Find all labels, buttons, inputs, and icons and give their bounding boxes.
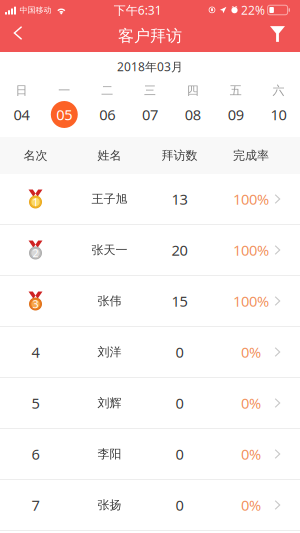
staticText: 张伟 [97,294,121,308]
staticText: 20 [171,240,187,260]
button[interactable]: 二 [86,81,129,129]
staticText: 四 [187,83,199,98]
staticText: 0% [241,444,261,464]
staticText: 张天一 [91,243,127,257]
staticText: 2 [32,246,38,260]
staticText: 0 [175,444,183,464]
staticText: 7 [31,495,39,515]
staticText: 二 [101,83,113,98]
staticText: 5 [31,393,39,413]
staticText: 中国移动 [19,5,51,15]
staticText: 刘辉 [97,396,121,410]
staticText: 07 [142,105,158,124]
button[interactable]: Filter [254,20,300,51]
staticText: 6 [31,444,39,464]
button[interactable]: Back [0,20,39,52]
staticText: 一 [58,83,70,98]
staticText: 李阳 [97,447,121,461]
button[interactable]: 四 [171,81,214,129]
staticText: 04 [13,105,29,124]
button[interactable]: 5 [0,378,300,429]
staticText: 三 [144,83,156,98]
staticText: 0 [175,393,183,413]
button[interactable]: 五 [214,81,257,129]
staticText: 名次 [23,148,47,163]
staticText: 05 [56,105,72,124]
staticText: 刘洋 [97,345,121,359]
staticText: 06 [99,105,115,124]
staticText: 下午6:31 [114,2,162,18]
staticText: 0% [241,495,261,515]
staticText: 拜访数 [161,148,197,163]
button[interactable]: 4 [0,327,300,378]
staticText: 1 [32,195,38,209]
button[interactable]: 7 [0,480,300,531]
staticText: 13 [171,189,187,209]
staticText: 09 [228,105,244,124]
staticText: 0% [241,342,261,362]
staticText: 4 [31,342,39,362]
staticText: 姓名 [97,148,121,163]
staticText: 日 [15,83,27,98]
staticText: 六 [273,83,285,98]
staticText: 0 [175,342,183,362]
button[interactable]: 六 [257,81,300,129]
staticText: 10 [271,105,287,124]
staticText: 100% [233,240,269,260]
button[interactable]: 2 [0,225,300,276]
staticText: 0% [241,393,261,413]
staticText: 100% [233,291,269,311]
staticText: 100% [233,189,269,209]
staticText: 五 [230,83,242,98]
button[interactable]: 3 [0,276,300,327]
staticText: 3 [32,297,38,311]
staticText: 2018年03月 [117,58,183,74]
staticText: 王子旭 [91,192,127,206]
button[interactable]: 三 [129,81,171,129]
staticText: 22% [241,2,265,18]
staticText: 0 [175,495,183,515]
staticText: 15 [171,291,187,311]
staticText: 张扬 [97,498,121,512]
staticText: 客户拜访 [118,26,182,46]
button[interactable]: 日 [0,81,43,129]
button[interactable]: 1 [0,174,300,225]
button[interactable]: 一 [43,81,86,129]
staticText: 完成率 [233,148,269,163]
button[interactable]: 6 [0,429,300,480]
staticText: 08 [185,105,201,124]
